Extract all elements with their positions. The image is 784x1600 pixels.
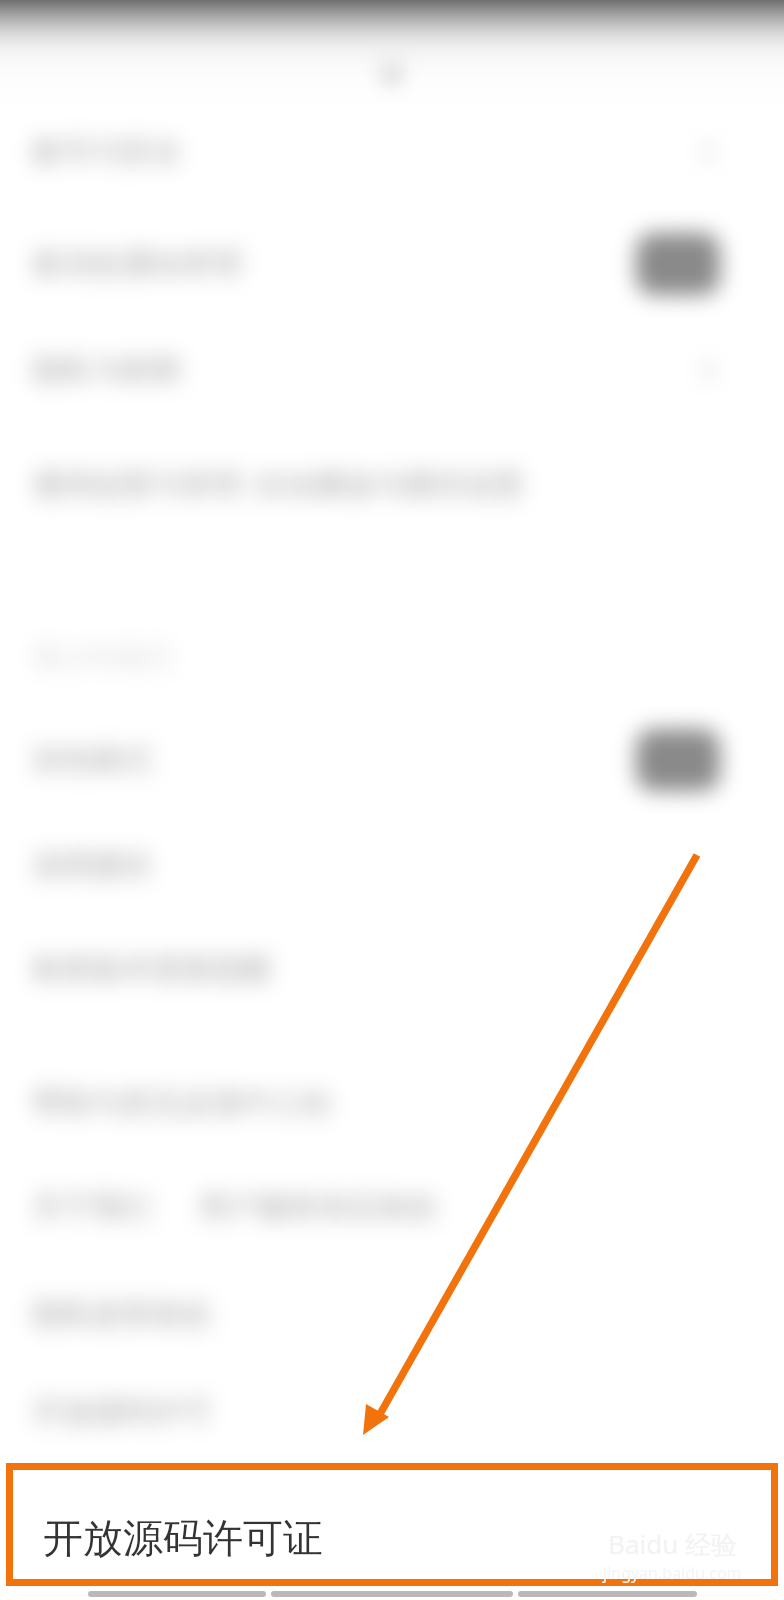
button[interactable]: 通用设置与管理: [0, 430, 784, 540]
staticText: jingyan.baidu.com: [603, 1562, 742, 1584]
staticText: 开放源码许可: [32, 1393, 212, 1431]
button[interactable]: Baidu 经验: [6, 1463, 778, 1586]
button[interactable]: Navigation: [518, 1591, 697, 1597]
button[interactable]: 关于我们: [0, 1152, 784, 1262]
staticText: 自动播放与缓存设置: [254, 466, 524, 504]
staticText: 账号与安全: [32, 133, 182, 171]
button[interactable]: 隐私与权限: [0, 315, 784, 425]
staticText: 通用设置与管理: [32, 466, 242, 504]
button[interactable]: 开放源码许可: [0, 1357, 784, 1467]
staticText: Baidu 经验: [608, 1526, 738, 1562]
button[interactable]: 账号与安全: [0, 97, 784, 207]
staticText: 清理缓存: [32, 847, 152, 885]
staticText: 帮助与意见反馈中心站: [32, 1084, 332, 1122]
staticText: 深色模式: [32, 741, 152, 779]
button[interactable]: Navigation: [271, 1591, 513, 1597]
button[interactable]: 新消息通知管理: [0, 209, 784, 319]
staticText: 设: [378, 56, 406, 91]
button[interactable]: 隐私政策条款: [0, 1259, 784, 1369]
staticText: 开放源码许可证: [43, 1513, 323, 1563]
staticText: 用户服务协议条款: [198, 1188, 438, 1226]
button[interactable]: 清理缓存: [0, 811, 784, 921]
staticText: 新消息通知管理: [32, 245, 242, 283]
button[interactable]: 帮助与意见反馈中心站: [0, 1048, 784, 1158]
staticText: 隐私与权限: [32, 351, 182, 389]
staticText: 检查版本更新提醒: [32, 950, 272, 988]
button[interactable]: 检查版本更新提醒: [0, 914, 784, 1024]
button[interactable]: Navigation: [88, 1591, 266, 1597]
button[interactable]: 深色模式: [0, 705, 784, 815]
staticText: 隐私政策条款: [32, 1295, 212, 1333]
staticText: 关于我们: [32, 1188, 152, 1226]
